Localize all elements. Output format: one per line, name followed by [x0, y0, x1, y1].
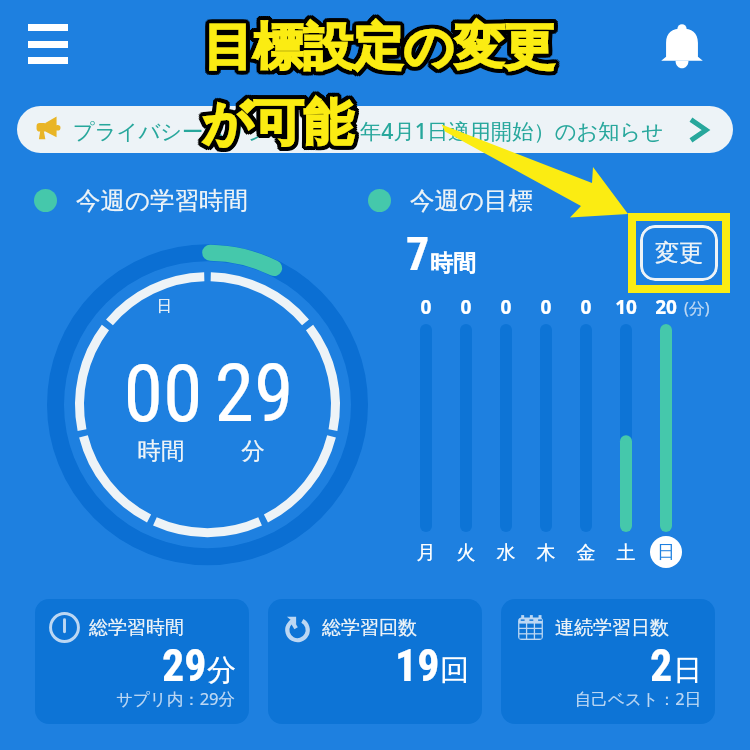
staticText: 目標設定の変更: [199, 18, 551, 81]
staticText: が可能: [198, 94, 350, 157]
staticText: 目標設定の変更: [204, 19, 556, 82]
staticText: 目標設定の変更: [203, 14, 555, 77]
staticText: 目標設定の変更: [205, 18, 557, 81]
staticText: が可能: [204, 94, 356, 157]
staticText: が可能: [201, 93, 353, 156]
staticText: 火: [446, 541, 486, 565]
staticText: 目標設定の変更: [201, 14, 553, 77]
staticText: 目標設定の変更: [201, 20, 553, 83]
button[interactable]: プライバシーポリシー（2021年4月1日適用開始）のお知らせ: [17, 106, 733, 153]
staticText: 目標設定の変更: [205, 14, 557, 77]
staticText: 今週の目標: [410, 185, 534, 216]
staticText: 0: [406, 294, 446, 320]
staticText: 金: [566, 541, 606, 565]
staticText: プライバシーポリシー（2021年4月1日適用開始）のお知らせ: [73, 116, 664, 145]
staticText: が可能: [206, 90, 358, 153]
staticText: 日: [657, 541, 675, 564]
button[interactable]: 総学習時間: [35, 599, 249, 724]
staticText: 目標設定の変更: [202, 17, 554, 80]
staticText: 目標設定の変更: [201, 18, 553, 81]
staticText: 今週の学習時間: [76, 185, 249, 216]
staticText: 日: [673, 652, 702, 689]
staticText: 目標設定の変更: [203, 16, 555, 79]
staticText: 目標設定の変更: [207, 14, 559, 77]
staticText: が可能: [203, 89, 355, 152]
staticText: が可能: [202, 88, 354, 151]
staticText: 目標設定の変更: [201, 16, 553, 79]
staticText: 29: [204, 347, 304, 441]
staticText: 総学習時間: [89, 616, 184, 640]
staticText: 目標設定の変更: [200, 13, 552, 76]
staticText: 月: [406, 541, 446, 565]
staticText: 目標設定の変更: [200, 17, 552, 80]
staticText: 10: [606, 294, 646, 320]
staticText: が可能: [204, 96, 356, 159]
staticText: が可能: [203, 91, 355, 154]
staticText: 目標設定の変更: [202, 13, 554, 76]
staticText: 分: [207, 652, 236, 689]
staticText: 目標設定の変更: [205, 20, 557, 83]
button[interactable]: Menu: [14, 6, 82, 74]
staticText: 目標設定の変更: [204, 15, 556, 78]
staticText: が可能: [199, 93, 351, 156]
staticText: 変更: [655, 238, 703, 268]
staticText: が可能: [204, 92, 356, 155]
staticText: 目標設定の変更: [204, 13, 556, 76]
staticText: が可能: [203, 95, 355, 158]
staticText: が可能: [204, 88, 356, 151]
staticText: 時間: [430, 249, 476, 278]
staticText: 29: [162, 640, 207, 692]
staticText: 目標設定の変更: [205, 16, 557, 79]
staticText: 土: [606, 541, 646, 565]
staticText: が可能: [200, 90, 352, 153]
staticText: 目標設定の変更: [201, 12, 553, 75]
staticText: 連続学習日数: [555, 616, 669, 640]
staticText: 目標設定の変更: [199, 16, 551, 79]
button[interactable]: 連続学習日数: [501, 599, 715, 724]
staticText: が可能: [203, 93, 355, 156]
staticText: が可能: [202, 90, 354, 153]
staticText: 目標設定の変更: [207, 18, 559, 81]
staticText: が可能: [199, 89, 351, 152]
staticText: が可能: [200, 96, 352, 159]
staticText: 回: [440, 652, 469, 689]
staticText: 目標設定の変更: [207, 16, 559, 79]
staticText: (分): [684, 297, 710, 319]
staticText: 0: [446, 294, 486, 320]
staticText: 目標設定の変更: [206, 13, 558, 76]
staticText: 時間: [121, 436, 201, 466]
staticText: が可能: [205, 91, 357, 154]
staticText: が可能: [200, 88, 352, 151]
staticText: 00: [113, 347, 213, 441]
staticText: 分: [213, 436, 293, 466]
staticText: が可能: [200, 94, 352, 157]
staticText: が可能: [201, 91, 353, 154]
staticText: が可能: [198, 90, 350, 153]
staticText: が可能: [205, 93, 357, 156]
staticText: が可能: [199, 91, 351, 154]
staticText: 19: [395, 640, 440, 692]
staticText: が可能: [205, 95, 357, 158]
staticText: 目標設定の変更: [206, 19, 558, 82]
staticText: 水: [486, 541, 526, 565]
staticText: 2: [650, 640, 673, 692]
staticText: 目標設定の変更: [202, 15, 554, 78]
staticText: が可能: [200, 92, 352, 155]
staticText: 目標設定の変更: [203, 18, 555, 81]
staticText: 目標設定の変更: [200, 15, 552, 78]
staticText: が可能: [204, 90, 356, 153]
staticText: が可能: [201, 95, 353, 158]
staticText: 7: [406, 227, 430, 281]
staticText: が可能: [201, 89, 353, 152]
staticText: が可能: [206, 94, 358, 157]
staticText: 木: [526, 541, 566, 565]
button[interactable]: Notifications: [655, 19, 709, 73]
button[interactable]: 総学習回数: [268, 599, 482, 724]
button[interactable]: 変更: [640, 225, 718, 281]
staticText: 目標設定の変更: [206, 15, 558, 78]
staticText: 総学習回数: [322, 616, 417, 640]
staticText: が可能: [202, 94, 354, 157]
staticText: 日: [157, 297, 172, 316]
staticText: 目標設定の変更: [204, 17, 556, 80]
staticText: が可能: [198, 92, 350, 155]
